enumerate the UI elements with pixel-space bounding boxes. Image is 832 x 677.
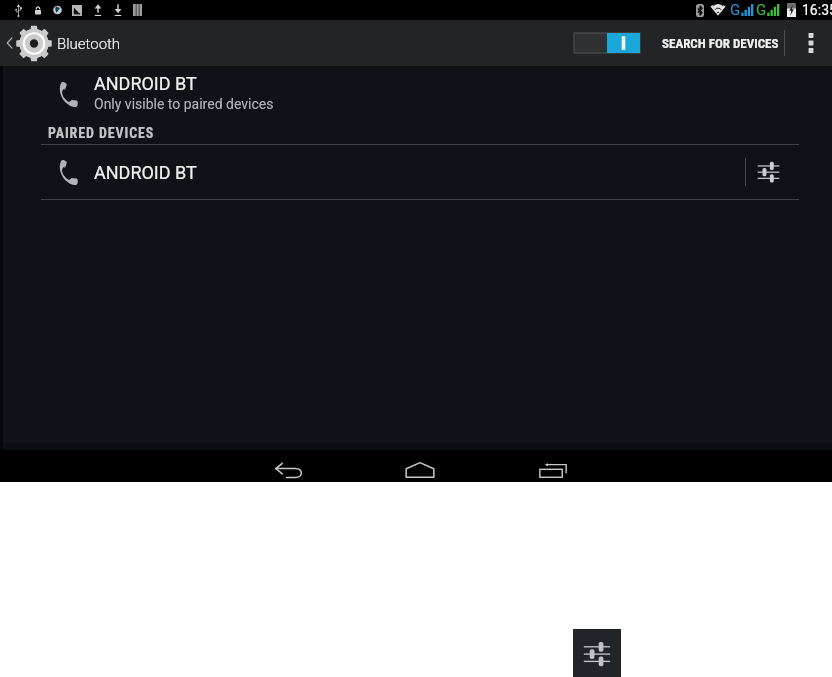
button[interactable]: Recent apps bbox=[520, 450, 586, 482]
button[interactable]: Navigate up bbox=[0, 20, 121, 66]
button[interactable]: Device settings bbox=[746, 145, 791, 199]
button[interactable]: Bluetooth on off switch bbox=[564, 20, 649, 66]
staticText: ANDROID BT bbox=[94, 162, 197, 183]
staticText: ANDROID BT bbox=[94, 73, 197, 94]
staticText: 16:35 bbox=[802, 2, 832, 18]
staticText: G bbox=[756, 1, 767, 19]
button[interactable]: SEARCH FOR DEVICES bbox=[652, 20, 789, 66]
button[interactable]: More options bbox=[789, 20, 832, 66]
button[interactable]: ANDROID BT bbox=[0, 145, 745, 199]
button[interactable]: Home bbox=[387, 450, 453, 482]
staticText: Bluetooth bbox=[57, 35, 121, 53]
staticText: SEARCH FOR DEVICES bbox=[662, 36, 779, 51]
staticText: Only visible to paired devices bbox=[94, 96, 274, 112]
button[interactable]: Back bbox=[255, 450, 321, 482]
button[interactable]: ANDROID BT bbox=[0, 66, 832, 122]
staticText: G bbox=[730, 1, 741, 19]
button[interactable]: Device settings bbox=[573, 629, 621, 677]
staticText: PAIRED DEVICES bbox=[48, 125, 155, 141]
